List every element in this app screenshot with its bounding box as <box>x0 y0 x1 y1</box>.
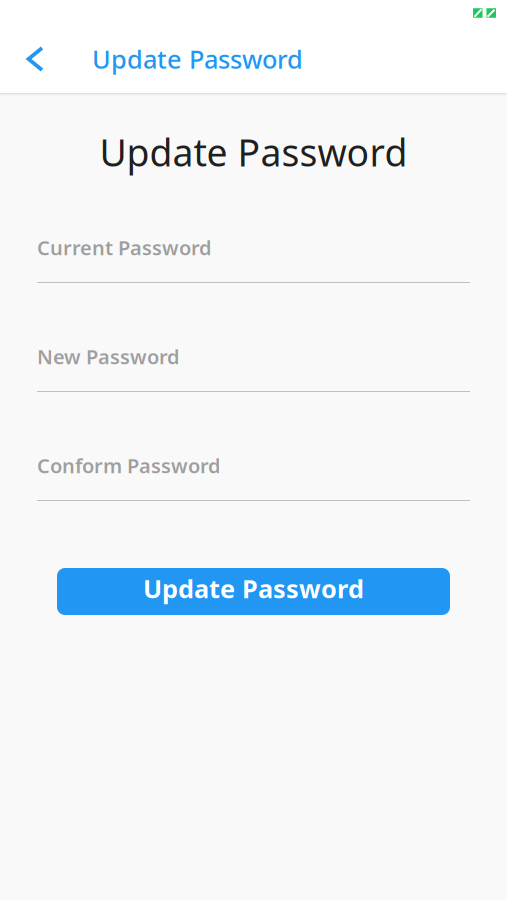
staticText: Current Password <box>37 234 212 261</box>
button[interactable]: New Password <box>37 341 470 392</box>
button[interactable]: Conform Password <box>37 450 470 501</box>
staticText: Update Password <box>92 42 303 76</box>
button[interactable]: Update Password <box>57 568 450 615</box>
staticText: New Password <box>37 343 180 370</box>
staticText: Conform Password <box>37 452 221 479</box>
button[interactable]: Back <box>9 33 61 85</box>
staticText: Update Password <box>99 127 407 177</box>
staticText: Update Password <box>143 572 364 605</box>
button[interactable]: Current Password <box>37 232 470 283</box>
